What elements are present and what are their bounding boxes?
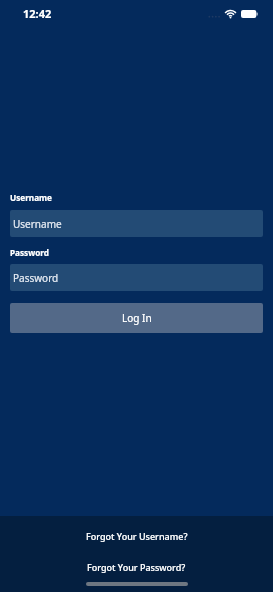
- button[interactable]: Log In: [10, 303, 263, 333]
- staticText: Password: [13, 271, 59, 285]
- staticText: Forgot Your Username?: [86, 530, 188, 542]
- other: Wi-Fi: [224, 9, 237, 19]
- staticText: Log In: [122, 311, 152, 325]
- staticText: Password: [10, 247, 50, 258]
- button[interactable]: Password: [10, 264, 263, 291]
- staticText: Username: [10, 192, 52, 203]
- button[interactable]: Username: [10, 210, 263, 237]
- staticText: Forgot Your Password?: [87, 561, 186, 573]
- other: Cellular signal: [208, 9, 221, 18]
- staticText: Username: [13, 217, 62, 231]
- other: Battery full: [241, 9, 258, 19]
- button[interactable]: Forgot Your Username?: [76, 527, 198, 545]
- button[interactable]: Forgot Your Password?: [77, 558, 196, 576]
- staticText: 12:42: [23, 6, 52, 21]
